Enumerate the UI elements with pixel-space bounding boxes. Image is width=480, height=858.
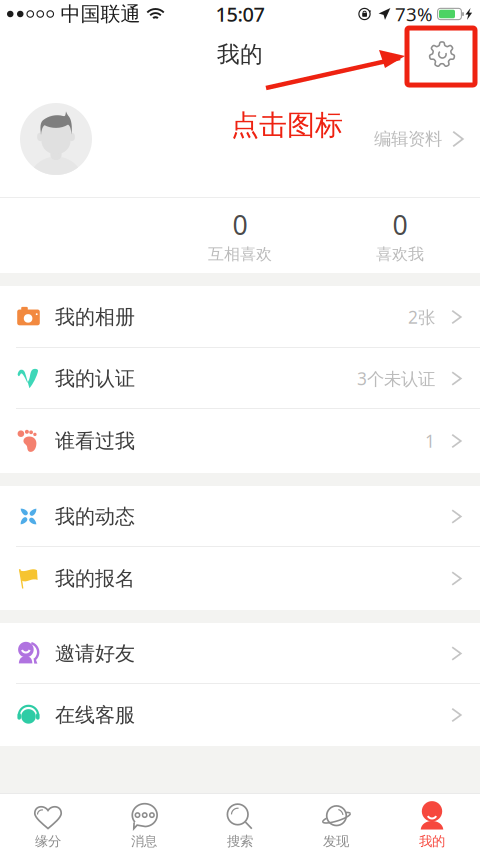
button[interactable]: 编辑资料	[0, 81, 480, 197]
staticText: 缘分	[35, 833, 61, 849]
button[interactable]: 0	[160, 198, 320, 273]
staticText: 在线客服	[55, 703, 135, 727]
button[interactable]: 设置	[418, 30, 466, 78]
button[interactable]: 缘分	[0, 793, 96, 858]
staticText: 73%	[395, 2, 433, 26]
staticText: 点击图标	[231, 108, 343, 142]
staticText: 15:07	[215, 1, 264, 27]
button[interactable]: 谁看过我	[0, 409, 480, 473]
staticText: 我的	[217, 41, 263, 68]
staticText: 互相喜欢	[208, 244, 272, 264]
staticText: 邀请好友	[55, 641, 135, 666]
button[interactable]: 我的认证	[0, 348, 480, 409]
staticText: 我的动态	[55, 504, 135, 529]
staticText: 消息	[131, 833, 157, 849]
staticText: 谁看过我	[55, 429, 135, 453]
staticText: 我的报名	[55, 566, 135, 591]
button[interactable]: 我的报名	[0, 547, 480, 610]
staticText: 我的相册	[55, 305, 135, 329]
staticText: 发现	[323, 833, 349, 849]
staticText: 编辑资料	[374, 128, 442, 150]
staticText: 我的	[419, 833, 445, 849]
button[interactable]: 我的	[384, 793, 480, 858]
button[interactable]: 邀请好友	[0, 623, 480, 684]
staticText: 0	[392, 207, 407, 242]
button[interactable]: 我的动态	[0, 486, 480, 547]
button[interactable]: 消息	[96, 793, 192, 858]
button[interactable]: 0	[320, 198, 480, 273]
button[interactable]: 我的相册	[0, 286, 480, 348]
button[interactable]: 在线客服	[0, 684, 480, 746]
staticText: 中国联通	[60, 2, 140, 26]
staticText: 我的认证	[55, 366, 135, 391]
staticText: 喜欢我	[376, 244, 424, 264]
staticText: 3个未认证	[357, 367, 435, 390]
button[interactable]: 发现	[288, 793, 384, 858]
staticText: 1	[425, 429, 435, 452]
staticText: 2张	[408, 305, 435, 328]
staticText: 0	[232, 207, 247, 242]
staticText: 搜索	[227, 833, 253, 849]
button[interactable]: 搜索	[192, 793, 288, 858]
